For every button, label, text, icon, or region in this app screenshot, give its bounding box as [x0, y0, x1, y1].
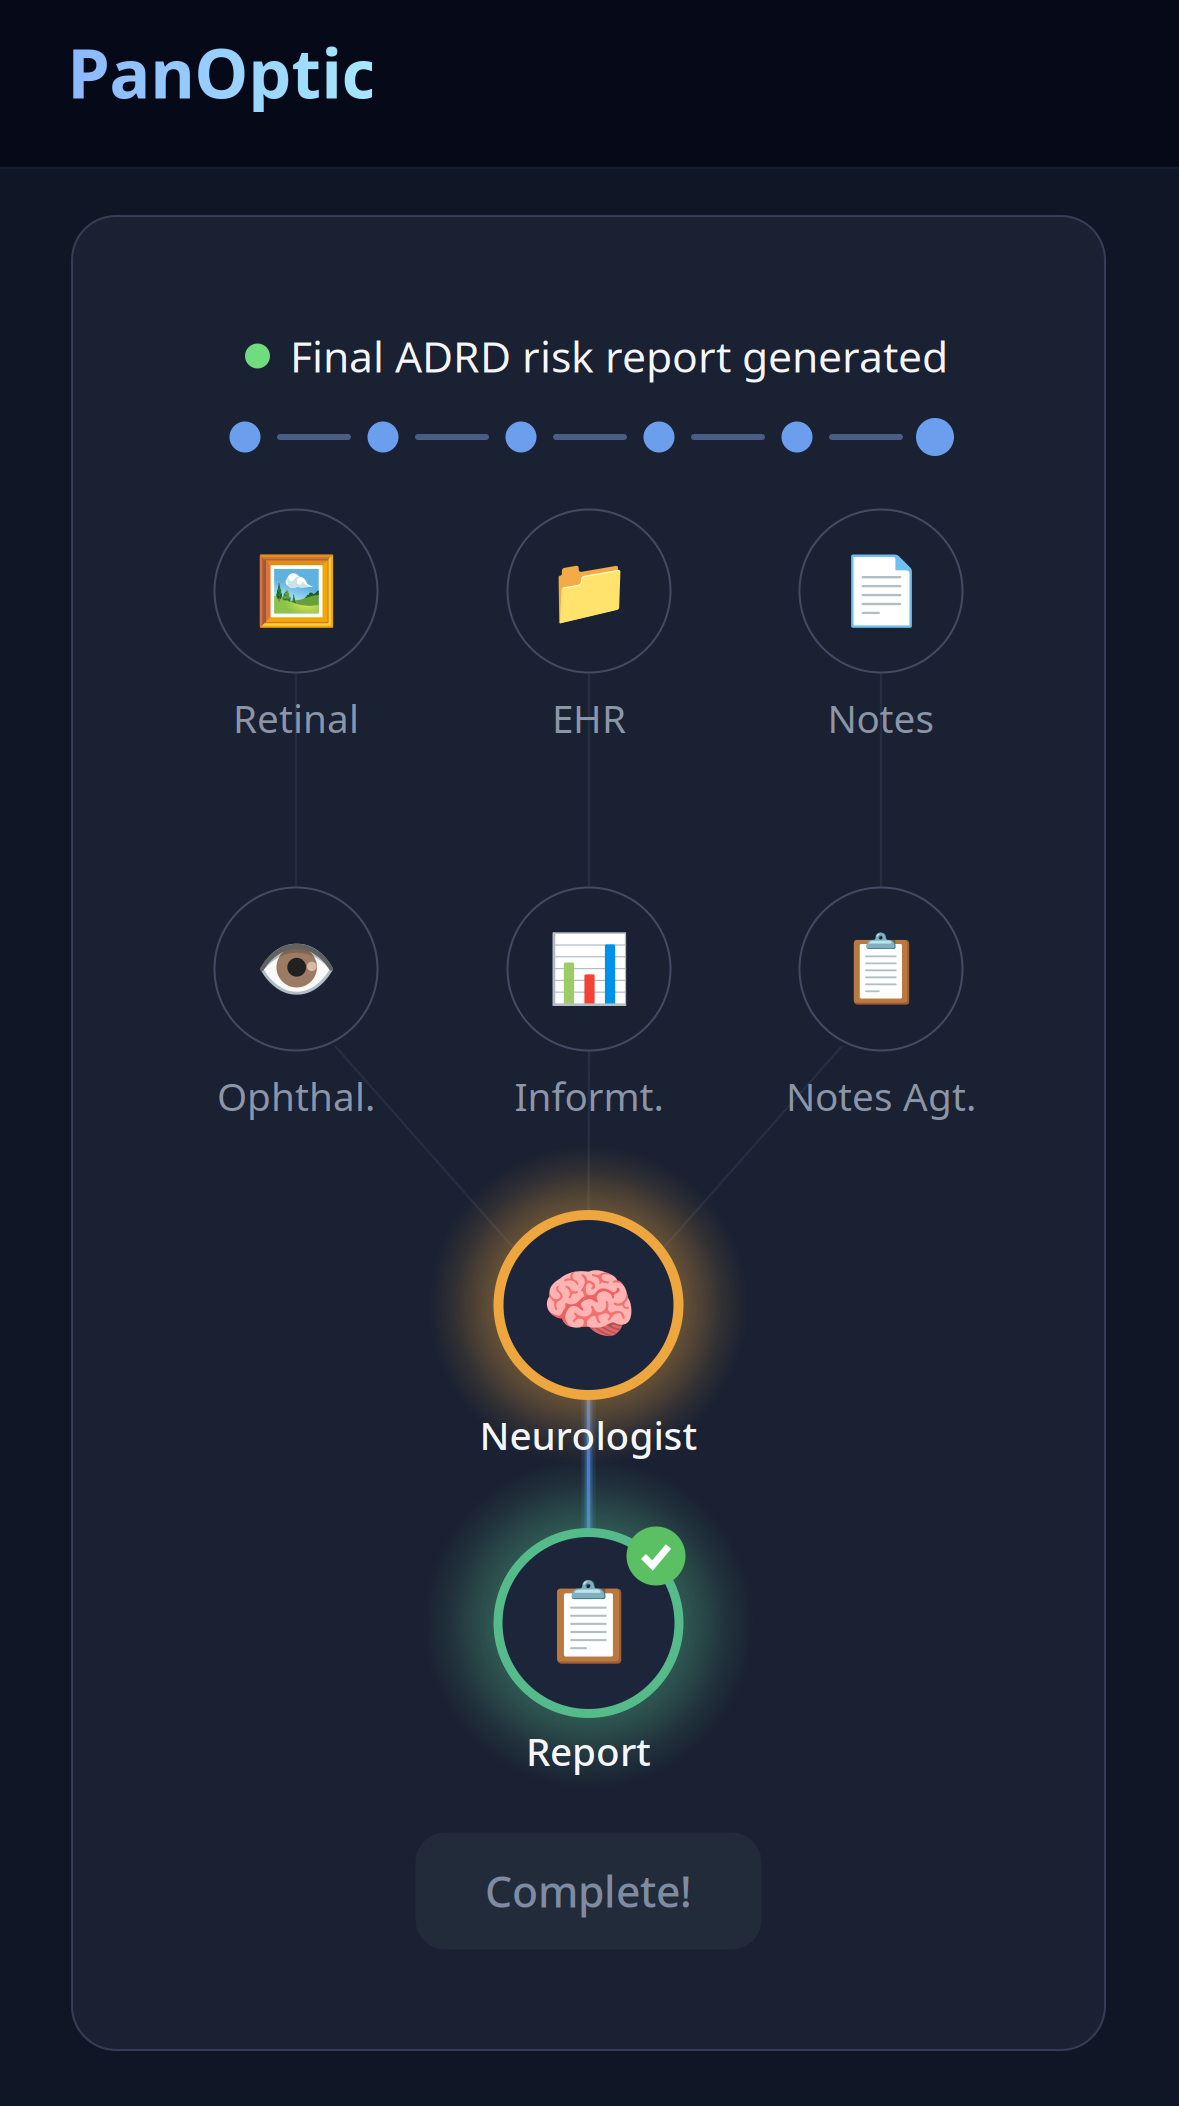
staticText: 📁 [547, 553, 630, 629]
staticText: 📋 [540, 1579, 636, 1667]
staticText: Ophthal. [217, 1070, 375, 1122]
staticText: Retinal [233, 692, 359, 744]
staticText: 📄 [839, 553, 922, 629]
staticText: Complete! [485, 1863, 692, 1919]
staticText: 🧠 [540, 1261, 636, 1349]
staticText: 📋 [839, 931, 922, 1007]
staticText: 👁️ [254, 931, 337, 1007]
staticText: 🖼️ [254, 553, 337, 629]
staticText: Notes [827, 692, 934, 744]
button[interactable]: 🖼️ [166, 442, 426, 740]
staticText: Neurologist [479, 1409, 697, 1461]
staticText: Report [526, 1725, 651, 1777]
button[interactable]: 👁️ [166, 820, 426, 1118]
staticText: Informt. [514, 1070, 663, 1122]
staticText: EHR [552, 692, 626, 744]
button[interactable]: 🧠 [458, 1153, 718, 1457]
staticText: Final ADRD risk report generated [290, 328, 948, 384]
button[interactable]: 📋 [751, 820, 1011, 1118]
staticText: 📊 [547, 931, 630, 1007]
button[interactable]: Complete! [415, 1832, 761, 1949]
button[interactable]: 📊 [459, 820, 719, 1118]
button[interactable]: 📄 [751, 442, 1011, 740]
staticText: Notes Agt. [786, 1070, 976, 1122]
button[interactable]: 📋 [458, 1473, 718, 1773]
button[interactable]: 📁 [459, 442, 719, 740]
